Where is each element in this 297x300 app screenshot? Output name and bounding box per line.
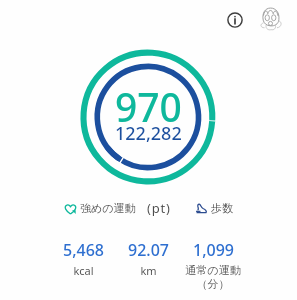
staticText: 通常の運動 （分） <box>185 263 241 291</box>
staticText: 5,468 <box>63 239 104 261</box>
button[interactable]: 歩数 <box>195 201 233 215</box>
staticText: 122,282 <box>115 121 182 146</box>
button[interactable]: 強めの運動 <box>64 199 171 217</box>
button[interactable]: Activity rings, 970 points, 122,282 step… <box>81 50 215 184</box>
staticText: (pt) <box>147 199 171 217</box>
button[interactable]: Information <box>222 7 247 32</box>
button[interactable]: 5,468 <box>39 239 127 278</box>
staticText: 強めの運動 <box>80 201 136 215</box>
button[interactable]: Profile <box>255 2 285 32</box>
button[interactable]: 92.07 <box>104 239 192 278</box>
staticText: 970 <box>115 80 182 133</box>
staticText: kcal <box>73 263 94 278</box>
button[interactable]: 1,099 <box>169 239 257 291</box>
staticText: 92.07 <box>128 239 169 261</box>
staticText: km <box>140 263 157 278</box>
staticText: 歩数 <box>211 201 233 215</box>
staticText: 1,099 <box>193 239 234 261</box>
